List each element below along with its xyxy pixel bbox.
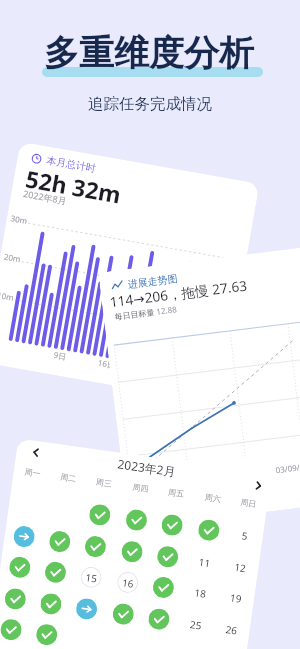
button[interactable]: 15 [79,565,103,589]
button[interactable]: Day 9 completed [120,540,144,564]
button[interactable]: Next month [248,475,268,495]
staticText: 26 [225,622,239,638]
staticText: 20m [3,251,22,264]
staticText: 03/09/2023 [275,459,300,475]
staticText: 每日目标量 [114,307,155,322]
button[interactable]: Previous month [25,442,46,462]
staticText: 12.88 [156,303,178,317]
button[interactable]: 11 [192,550,216,574]
staticText: 5 [241,528,249,543]
staticText: 9日 [53,349,68,362]
staticText: 18 [194,585,207,601]
button[interactable]: Day 17 completed [151,576,175,599]
button[interactable]: Day 14 completed [44,560,67,584]
staticText: 周三 [95,477,112,489]
staticText: 16 [121,575,135,591]
button[interactable]: Day 28 completed [35,623,58,646]
button[interactable]: Day 10 completed [156,545,180,569]
staticText: 16日 [97,357,117,371]
button[interactable]: Day 13 completed [8,555,32,579]
button[interactable]: 16 [116,571,140,594]
staticText: 周六 [204,492,221,504]
button[interactable]: Day 7 completed [48,530,72,553]
button[interactable]: Day 21 completed [39,592,63,616]
button[interactable]: Day 27 completed [0,618,23,641]
button[interactable]: Day 1 completed [88,503,112,527]
staticText: 52h 32m [23,162,123,210]
button[interactable]: Day 2 completed [125,508,148,532]
staticText: 15 [85,570,98,586]
staticText: 19 [229,590,243,606]
button[interactable]: Day 3 completed [160,513,184,537]
staticText: 23日 [143,365,162,379]
staticText: 周二 [60,472,77,484]
button[interactable]: Day 20 completed [3,587,27,611]
button[interactable]: Day 8 completed [84,535,107,558]
button[interactable]: Previous month [0,438,272,649]
staticText: 本月总计时 [45,153,97,175]
staticText: 11 [198,555,212,570]
staticText: 2022年8月 [22,187,68,206]
button[interactable]: Day 24 completed [147,607,171,631]
staticText: 进展走势图 [127,272,178,291]
staticText: 周四 [132,482,149,494]
staticText: 周五 [168,487,185,499]
button[interactable]: 12 [228,555,252,579]
button[interactable]: 进展走势图 [98,245,300,528]
button[interactable]: 本月总计时 [0,142,260,404]
button[interactable]: 26 [219,617,243,641]
button[interactable]: 18 [188,581,212,604]
staticText: 多重维度分析 [44,31,254,75]
staticText: 25 [189,617,203,633]
button[interactable]: 19 [224,586,247,609]
button[interactable]: Day 4 completed [197,518,221,542]
staticText: 周日 [240,497,257,509]
button[interactable]: Day 6 skipped [12,525,36,548]
button[interactable]: 25 [184,612,207,636]
staticText: 114→206，拖慢 27.63 [109,275,249,311]
staticText: 2023年2月 [117,455,177,480]
staticText: 10m [0,289,15,303]
staticText: 12 [233,560,247,575]
staticText: 追踪任务完成情况 [0,94,300,114]
staticText: 周一 [24,467,41,479]
button[interactable]: Day 22 skipped [75,597,98,621]
staticText: 30m [10,212,29,226]
button[interactable]: Day 23 completed [111,602,135,626]
button[interactable]: 5 [233,523,256,547]
